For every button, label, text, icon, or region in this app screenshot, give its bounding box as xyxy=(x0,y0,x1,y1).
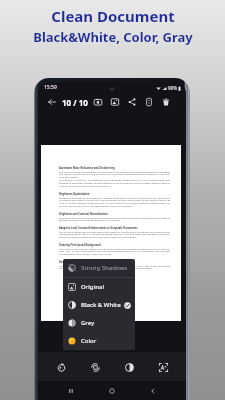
staticText: Document Edge Detection xyxy=(59,260,92,263)
staticText: Brightness Optimization xyxy=(59,192,90,195)
button[interactable]: Rotate xyxy=(50,356,72,378)
button[interactable]: Black & White xyxy=(63,296,135,314)
button[interactable]: Home xyxy=(104,383,120,399)
staticText: 98% xyxy=(168,85,177,91)
button[interactable]: Back xyxy=(44,94,60,110)
staticText: Automatic border detection locates the d… xyxy=(59,264,170,270)
button[interactable]: Strong Shadows xyxy=(63,259,135,277)
button[interactable]: Delete xyxy=(157,94,174,110)
button[interactable]: Original xyxy=(63,278,135,296)
button[interactable]: Gallery xyxy=(106,94,123,110)
staticText: 10 / 10 xyxy=(62,97,88,108)
staticText: Brightness and contrast enhancement auto… xyxy=(59,216,170,222)
button[interactable]: Crop xyxy=(89,94,106,110)
button[interactable]: Recent apps xyxy=(63,383,79,399)
staticText: 15:59 xyxy=(44,84,57,91)
staticText: Color xyxy=(81,337,97,345)
button[interactable]: Color xyxy=(63,332,135,350)
staticText: Black & White xyxy=(81,301,121,309)
staticText: Adaptive Local Contrast Enhancement to G… xyxy=(59,226,138,229)
button[interactable]: Text recognition xyxy=(152,356,174,378)
staticText: Brightness and Contrast Normalization xyxy=(59,212,108,215)
button[interactable]: Grey xyxy=(63,314,135,332)
staticText: Grey xyxy=(81,319,95,327)
staticText: Black&White, Color, Gray xyxy=(33,28,193,46)
staticText: Original xyxy=(81,283,105,291)
button[interactable]: Share xyxy=(123,94,140,110)
staticText: Clean Document xyxy=(51,6,175,26)
staticText: The function makes text and fine detail … xyxy=(59,230,170,239)
staticText: The full auto mode automatically removes… xyxy=(59,170,170,188)
staticText: Brightness equalization automatically re… xyxy=(59,196,170,208)
staticText: Cleaning Print-based Background xyxy=(59,243,101,246)
button[interactable]: Filter xyxy=(118,356,140,378)
button[interactable]: Back xyxy=(145,383,161,399)
button[interactable]: Save xyxy=(140,94,157,110)
staticText: Automatic Noise Reduction and Declutteri… xyxy=(59,166,115,169)
staticText: This feature automatically detects and r… xyxy=(59,247,170,256)
staticText: Strong Shadows xyxy=(81,264,128,272)
button[interactable]: Perspective correction xyxy=(84,356,106,378)
